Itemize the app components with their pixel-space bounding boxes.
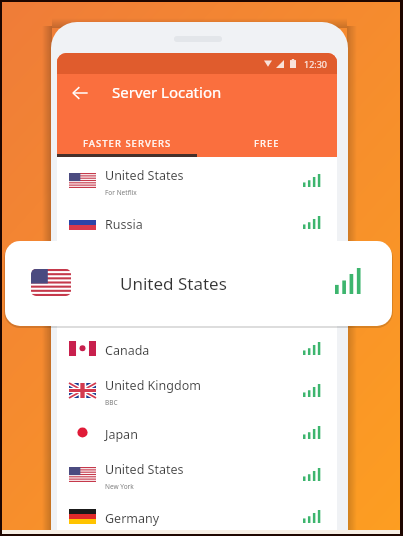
- button[interactable]: Japan: [57, 410, 337, 452]
- staticText: For Netflix: [105, 188, 137, 197]
- button[interactable]: Canada: [57, 326, 337, 368]
- button[interactable]: United States: [5, 241, 392, 326]
- staticText: New York: [105, 482, 134, 491]
- button[interactable]: FASTER SERVERS: [57, 129, 197, 157]
- staticText: FASTER SERVERS: [83, 137, 172, 150]
- staticText: United States: [120, 272, 227, 295]
- staticText: BBC: [105, 398, 118, 407]
- staticText: FREE: [254, 137, 280, 150]
- staticText: Japan: [105, 426, 138, 443]
- button[interactable]: United Kingdom: [57, 368, 337, 410]
- button[interactable]: Russia: [57, 200, 337, 242]
- button[interactable]: Back: [65, 78, 95, 108]
- button[interactable]: Spain: [57, 242, 337, 284]
- button[interactable]: United States: [57, 158, 337, 200]
- button[interactable]: France: [57, 284, 337, 326]
- staticText: United States: [105, 167, 184, 184]
- staticText: Server Location: [112, 82, 222, 102]
- button[interactable]: United States: [57, 452, 337, 494]
- staticText: United Kingdom: [105, 377, 201, 394]
- staticText: Canada: [105, 342, 150, 359]
- staticText: Russia: [105, 216, 143, 233]
- button[interactable]: FREE: [197, 129, 337, 157]
- staticText: 12:30: [304, 58, 328, 70]
- button[interactable]: Germany: [57, 494, 337, 531]
- staticText: Germany: [105, 510, 160, 527]
- staticText: United States: [105, 461, 184, 478]
